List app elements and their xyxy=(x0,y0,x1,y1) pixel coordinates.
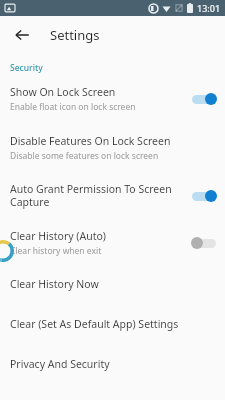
staticText: Settings xyxy=(50,26,100,44)
staticText: 13:01 xyxy=(197,2,221,14)
staticText: Clear (Set As Default App) Settings xyxy=(10,317,179,331)
button[interactable]: Disable Features On Lock Screen xyxy=(0,130,225,166)
button[interactable]: Show On Lock Screen xyxy=(0,81,225,117)
button[interactable]: Clear History Now xyxy=(0,273,225,295)
staticText: Show On Lock Screen xyxy=(10,85,116,99)
staticText: Clear History Now xyxy=(10,277,99,291)
button[interactable]: Auto Grant Permission To Screen Capture xyxy=(0,178,225,213)
staticText: Enable float icon on lock screen xyxy=(10,101,136,113)
staticText: Clear history when exit xyxy=(10,245,102,257)
button[interactable]: Toggle off xyxy=(191,236,217,250)
button[interactable]: Toggle on xyxy=(191,92,217,106)
button[interactable]: Back xyxy=(6,19,38,51)
staticText: Privacy And Security xyxy=(10,357,110,371)
button[interactable]: Privacy And Security xyxy=(0,353,225,375)
button[interactable]: Clear (Set As Default App) Settings xyxy=(0,313,225,335)
button[interactable]: Clear History (Auto) xyxy=(0,225,225,261)
staticText: Disable some features on lock screen xyxy=(10,150,159,162)
staticText: Clear History (Auto) xyxy=(10,229,106,243)
button[interactable]: Toggle on xyxy=(191,189,217,203)
staticText: Security xyxy=(10,62,43,74)
staticText: Auto Grant Permission To Screen Capture xyxy=(10,182,185,209)
staticText: Disable Features On Lock Screen xyxy=(10,134,171,148)
